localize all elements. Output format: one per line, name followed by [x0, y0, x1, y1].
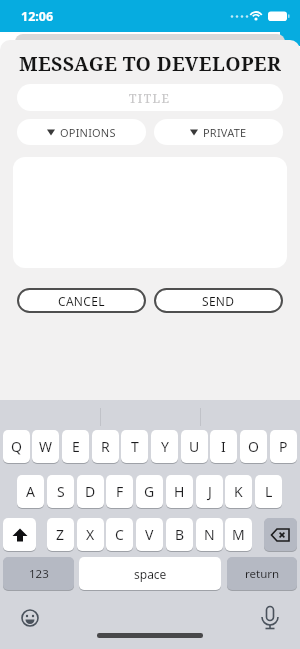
staticText: OPINIONS	[60, 125, 116, 140]
button[interactable]: R	[92, 430, 119, 463]
button[interactable]: O	[240, 430, 267, 463]
staticText: Q	[11, 437, 22, 456]
staticText: G	[144, 482, 155, 501]
staticText: P	[279, 437, 288, 456]
staticText: Y	[161, 437, 169, 456]
button[interactable]: S	[47, 475, 74, 508]
staticText: TITLE	[129, 90, 171, 106]
staticText: return	[245, 566, 280, 582]
staticText: MESSAGE TO DEVELOPER	[19, 50, 282, 76]
button[interactable]: Q	[3, 430, 30, 463]
staticText: O	[248, 437, 259, 456]
staticText: S	[57, 482, 65, 501]
button[interactable]: T	[121, 430, 148, 463]
button[interactable]: J	[196, 475, 223, 508]
staticText: V	[145, 525, 154, 544]
button[interactable]	[3, 518, 36, 551]
button[interactable]: V	[136, 518, 163, 551]
button[interactable]: Y	[151, 430, 178, 463]
staticText: J	[208, 482, 212, 501]
staticText: 12:06	[21, 8, 54, 25]
staticText: F	[116, 482, 124, 501]
button[interactable]: H	[166, 475, 193, 508]
staticText: CANCEL	[58, 293, 105, 309]
button[interactable]: return	[227, 557, 297, 590]
button[interactable]: X	[77, 518, 104, 551]
staticText: PRIVATE	[203, 125, 247, 140]
staticText: R	[101, 437, 110, 456]
button[interactable]: K	[225, 475, 252, 508]
button[interactable]: Z	[47, 518, 74, 551]
button[interactable]	[20, 608, 40, 628]
staticText: SEND	[202, 293, 235, 309]
button[interactable]: TITLE	[17, 84, 283, 111]
button[interactable]: CANCEL	[17, 288, 146, 313]
staticText: U	[189, 437, 200, 456]
button[interactable]: W	[32, 430, 59, 463]
staticText: N	[204, 525, 215, 544]
button[interactable]: B	[166, 518, 193, 551]
button[interactable]: N	[196, 518, 223, 551]
button[interactable]: space	[79, 557, 221, 590]
staticText: space	[134, 566, 167, 582]
button[interactable]: A	[17, 475, 44, 508]
staticText: C	[115, 525, 124, 544]
staticText: T	[131, 437, 139, 456]
button[interactable]: F	[106, 475, 133, 508]
button[interactable]: C	[106, 518, 133, 551]
button[interactable]: U	[181, 430, 208, 463]
staticText: L	[265, 482, 273, 501]
staticText: E	[72, 437, 80, 456]
button[interactable]: D	[77, 475, 104, 508]
staticText: D	[85, 482, 96, 501]
staticText: H	[174, 482, 185, 501]
button[interactable]: G	[136, 475, 163, 508]
button[interactable]: E	[62, 430, 89, 463]
button[interactable]: M	[225, 518, 252, 551]
button[interactable]	[264, 518, 297, 551]
staticText: W	[39, 437, 53, 456]
staticText: K	[234, 482, 243, 501]
button[interactable]: OPINIONS	[17, 119, 146, 145]
button[interactable]: 123	[3, 557, 74, 590]
button[interactable]: SEND	[154, 288, 283, 313]
button[interactable]: PRIVATE	[154, 119, 283, 145]
button[interactable]: P	[270, 430, 297, 463]
staticText: M	[232, 525, 245, 544]
staticText: I	[221, 437, 226, 456]
staticText: A	[26, 482, 35, 501]
button[interactable]: L	[255, 475, 282, 508]
button[interactable]: I	[210, 430, 237, 463]
staticText: 123	[29, 566, 49, 582]
staticText: B	[175, 525, 185, 544]
staticText: Z	[56, 525, 65, 544]
staticText: X	[86, 525, 95, 544]
button[interactable]	[260, 605, 280, 631]
